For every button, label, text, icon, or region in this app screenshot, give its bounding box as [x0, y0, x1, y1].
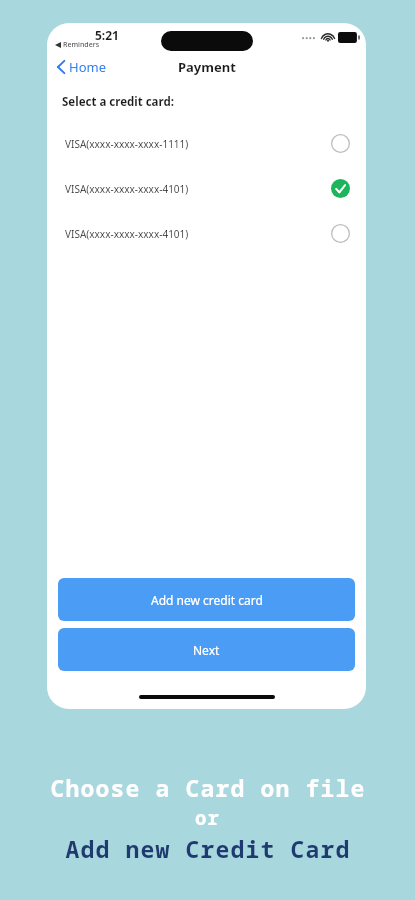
other: Selected card — [331, 179, 350, 198]
staticText: Add new Credit Card — [65, 833, 351, 864]
staticText: Choose a Card on file — [50, 772, 366, 803]
staticText: Add new credit card — [151, 592, 263, 608]
staticText: Payment — [178, 58, 236, 76]
button[interactable]: VISA(xxxx-xxxx-xxxx-4101) — [47, 220, 366, 247]
other: Select card — [331, 134, 350, 153]
button[interactable]: Next — [58, 628, 355, 671]
button[interactable]: Add new credit card — [58, 578, 355, 621]
staticText: or — [195, 805, 220, 831]
staticText: Next — [193, 642, 220, 658]
button[interactable]: VISA(xxxx-xxxx-xxxx-4101) — [47, 175, 366, 202]
other: Select card — [331, 224, 350, 243]
staticText: Home — [69, 58, 106, 76]
staticText: 5:21 — [95, 27, 119, 43]
staticText: Reminders — [63, 40, 100, 50]
staticText: VISA(xxxx-xxxx-xxxx-4101) — [65, 227, 189, 241]
button[interactable]: VISA(xxxx-xxxx-xxxx-1111) — [47, 130, 366, 157]
button[interactable]: Home — [47, 54, 114, 80]
staticText: VISA(xxxx-xxxx-xxxx-1111) — [65, 137, 189, 151]
staticText: VISA(xxxx-xxxx-xxxx-4101) — [65, 182, 189, 196]
staticText: Select a credit card: — [62, 94, 174, 110]
